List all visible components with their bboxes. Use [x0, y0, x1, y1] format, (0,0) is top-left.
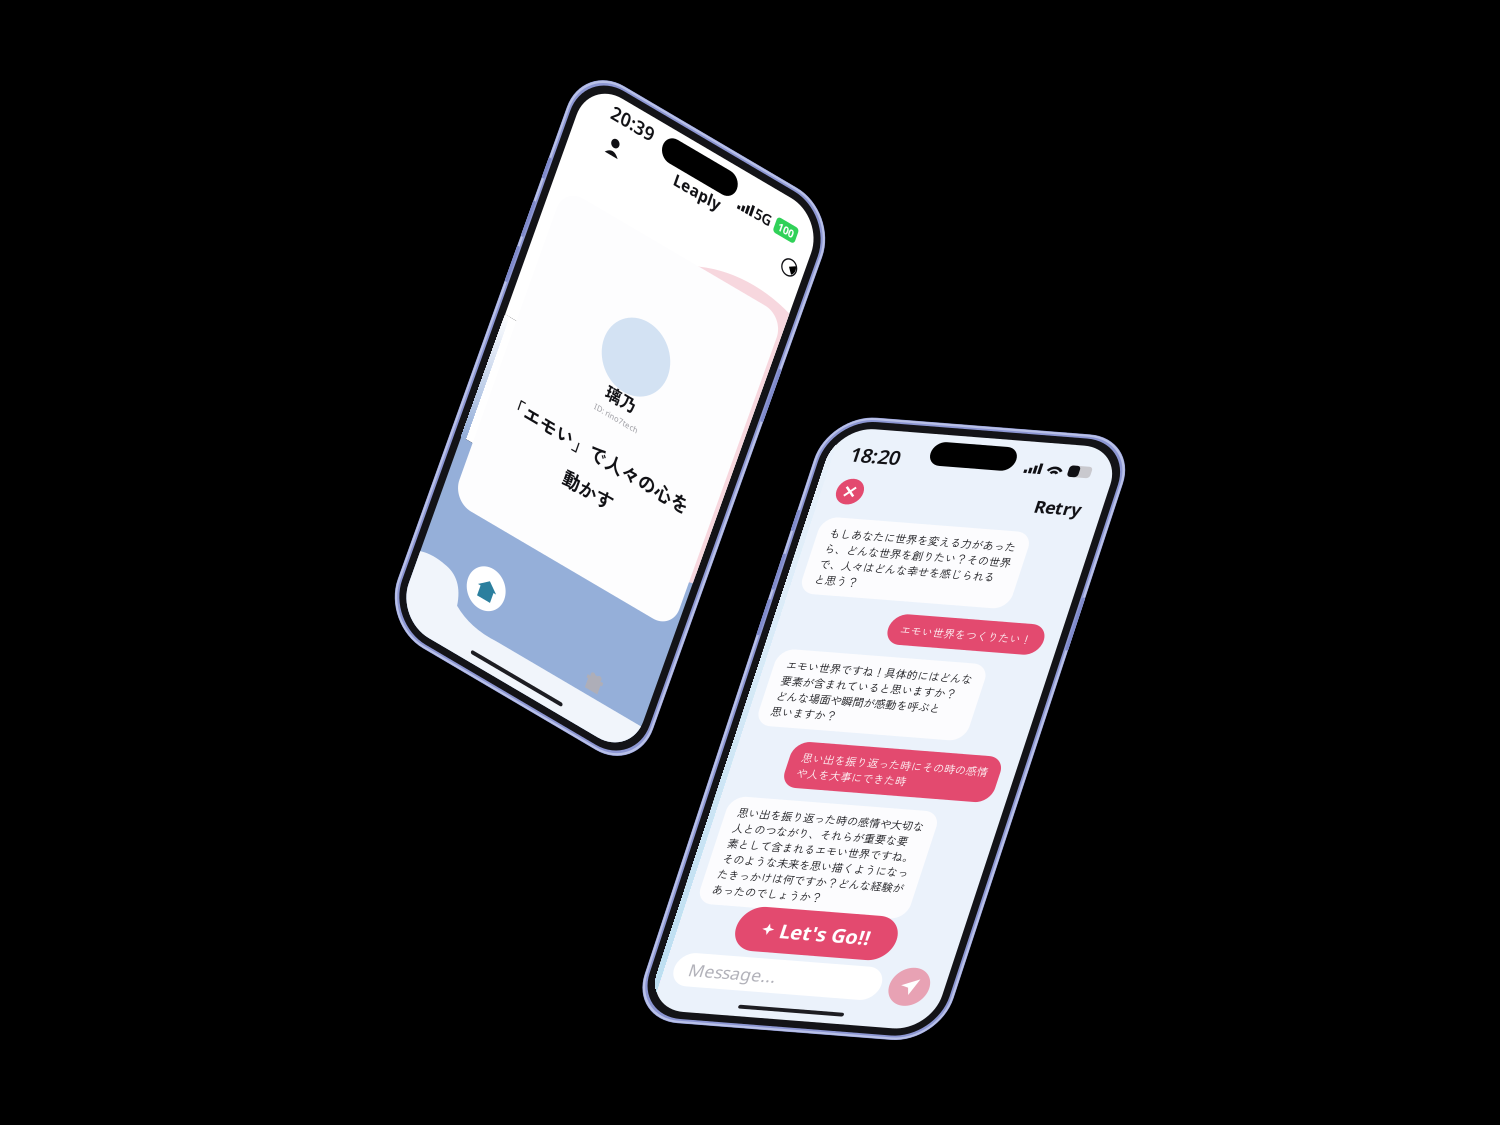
- button[interactable]: Profile: [634, 112, 647, 127]
- button[interactable]: Close: [861, 479, 888, 506]
- button[interactable]: Gifts: [797, 592, 814, 609]
- staticText: エモい世界をつくりたい！: [968, 621, 1100, 638]
- button[interactable]: Home: [650, 554, 692, 596]
- staticText: 思い出を振り返った時にその時の感情 や人を大事にできた時: [913, 760, 1100, 793]
- button[interactable]: Let's Go!!: [903, 925, 1064, 972]
- staticText: 20:39: [627, 78, 676, 102]
- staticText: もしあなたに世界を変える力があった ら、どんな世界を創りたい？その世界 で、人々…: [868, 528, 1055, 592]
- staticText: 「エモい」で人々の心を: [627, 385, 836, 413]
- button[interactable]: Retry: [1060, 481, 1107, 504]
- staticText: 18:20: [863, 440, 913, 467]
- staticText: Message...: [871, 984, 959, 1007]
- staticText: 動かす: [706, 421, 763, 449]
- staticText: エモい世界ですね！具体的にはどんな 要素が含まれていると思いますか？ どんな場面…: [868, 667, 1055, 731]
- staticText: Let's Go!!: [947, 935, 1038, 962]
- staticText: 思い出を振り返った時の感情や大切な 人とのつながり、それらが重要な要 素として含…: [868, 822, 1055, 919]
- staticText: Retry: [1060, 481, 1107, 504]
